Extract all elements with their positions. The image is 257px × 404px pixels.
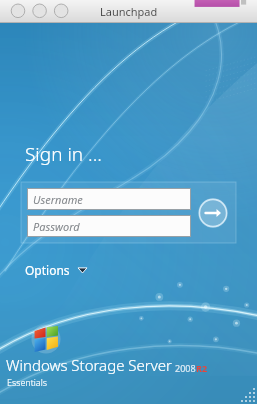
button[interactable]: Options [21,260,91,280]
staticText: Username [33,192,83,207]
staticText: 2008 [175,362,196,374]
staticText: Windows Storage Server [6,355,172,375]
staticText: Password [33,219,80,234]
button[interactable]: Username [28,189,190,209]
other: Windows logo [33,326,59,352]
staticText: Options [25,262,70,278]
staticText: Launchpad [100,4,158,19]
staticText: Essentials [7,376,47,388]
staticText: R2 [196,362,208,374]
button[interactable]: Password [28,216,190,236]
staticText: Sign in ... [25,141,102,167]
button[interactable]: Sign in [196,196,230,230]
